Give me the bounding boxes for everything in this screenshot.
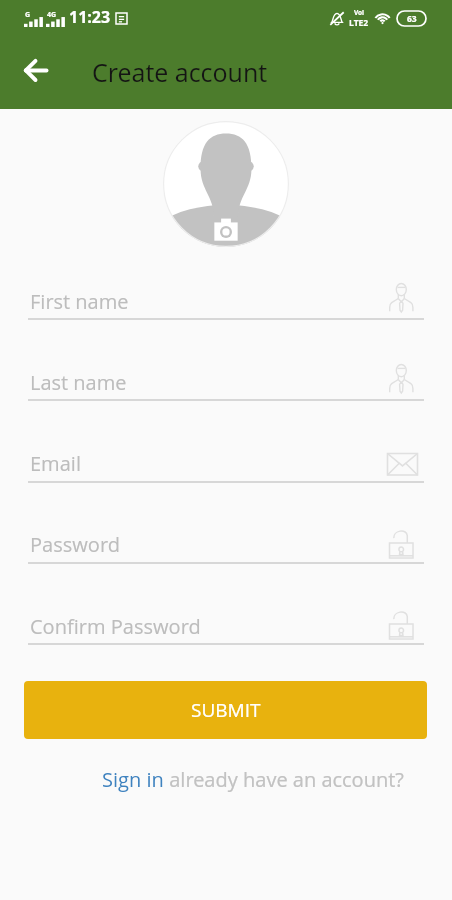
staticText: G [25, 10, 31, 20]
staticText: Password [30, 531, 120, 558]
button[interactable]: Sign in [102, 766, 164, 793]
staticText: First name [30, 288, 129, 315]
staticText: Email [30, 450, 81, 477]
staticText: 4G [47, 10, 57, 20]
staticText: Last name [30, 369, 127, 396]
button[interactable]: SUBMIT [24, 681, 427, 739]
staticText: 63 [407, 13, 417, 25]
staticText: 11:23 [69, 6, 111, 28]
staticText: Confirm Password [30, 613, 201, 640]
staticText: LTE2 [349, 17, 369, 29]
staticText: Create account [92, 55, 268, 89]
button[interactable]: Back [12, 47, 58, 93]
staticText: already have an account? [164, 766, 404, 793]
staticText: SUBMIT [191, 697, 261, 723]
button[interactable]: Change profile photo [163, 121, 289, 247]
staticText: Vol [354, 8, 365, 17]
